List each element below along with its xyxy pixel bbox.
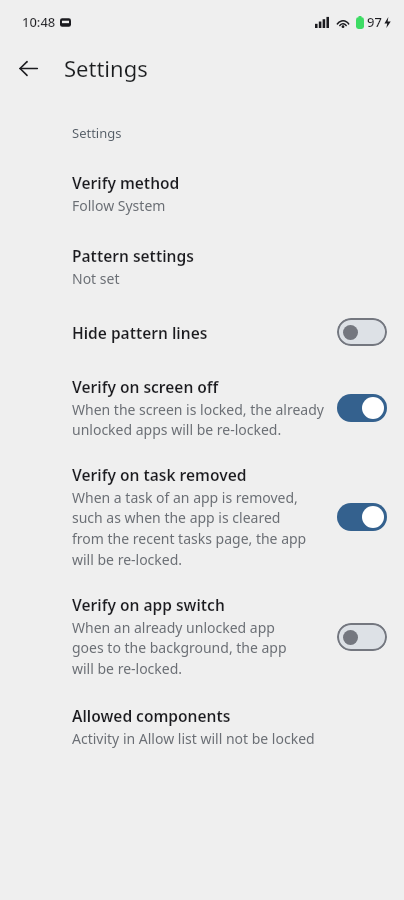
staticText: Verify on task removed <box>72 464 247 485</box>
button[interactable]: Allowed components <box>0 703 404 750</box>
staticText: Settings <box>72 124 122 142</box>
staticText: Activity in Allow list will not be locke… <box>72 729 372 748</box>
button[interactable]: Back <box>8 48 48 88</box>
staticText: 10:48 <box>22 13 56 31</box>
staticText: When an already unlocked app goes to the… <box>72 618 300 679</box>
staticText: Pattern settings <box>72 245 194 266</box>
staticText: Verify on app switch <box>72 594 225 615</box>
button[interactable]: Hide pattern lines <box>0 316 404 348</box>
button[interactable]: Verify on task removed <box>0 462 404 572</box>
staticText: When a task of an app is removed, such a… <box>72 488 312 570</box>
staticText: Hide pattern lines <box>72 322 208 343</box>
button[interactable]: Toggle off <box>337 623 387 651</box>
staticText: Follow System <box>72 196 372 215</box>
button[interactable]: Toggle off <box>337 318 387 346</box>
button[interactable]: Toggle on <box>337 503 387 531</box>
button[interactable]: Verify on screen off <box>0 374 404 442</box>
button[interactable]: Verify on app switch <box>0 592 404 681</box>
staticText: Verify on screen off <box>72 376 219 397</box>
staticText: 97 <box>367 13 382 31</box>
staticText: Settings <box>64 53 148 83</box>
button[interactable]: Verify method <box>0 170 404 217</box>
button[interactable]: Toggle on <box>337 394 387 422</box>
staticText: Verify method <box>72 172 180 193</box>
button[interactable]: Pattern settings <box>0 243 404 290</box>
staticText: When the screen is locked, the already u… <box>72 400 324 440</box>
staticText: Not set <box>72 269 372 288</box>
staticText: Allowed components <box>72 705 231 726</box>
